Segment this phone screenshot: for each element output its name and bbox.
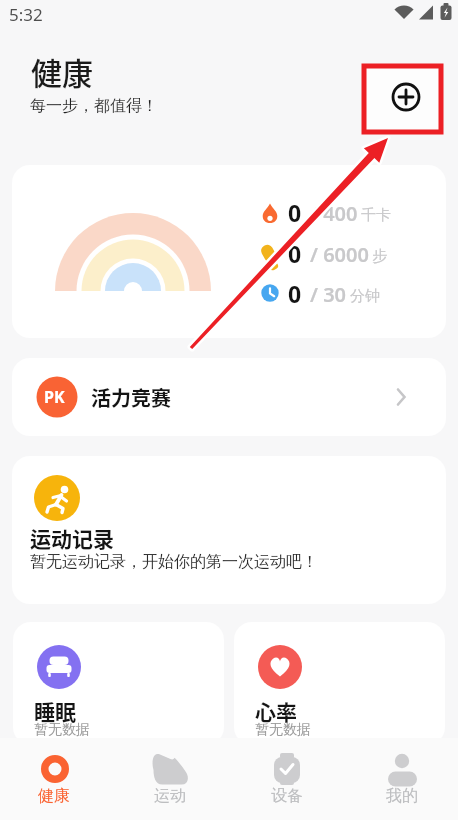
- staticText: 心率: [255, 696, 297, 726]
- staticText: 活力竞赛: [91, 383, 171, 412]
- staticText: 0: [288, 278, 302, 309]
- staticText: 步: [372, 247, 387, 266]
- button[interactable]: [382, 73, 430, 121]
- staticText: 每一步，都值得！: [30, 96, 158, 116]
- staticText: / 30: [310, 281, 347, 308]
- button[interactable]: [114, 738, 228, 820]
- button[interactable]: [0, 738, 114, 820]
- staticText: 睡眠: [34, 696, 76, 726]
- staticText: 运动记录: [30, 523, 114, 553]
- staticText: 0: [288, 197, 302, 228]
- staticText: PK: [44, 386, 65, 408]
- button[interactable]: [343, 738, 458, 820]
- button[interactable]: [12, 456, 446, 604]
- staticText: 分钟: [350, 287, 380, 306]
- staticText: 暂无运动记录，开始你的第一次运动吧！: [30, 552, 318, 572]
- staticText: 0: [288, 238, 302, 269]
- staticText: 设备: [271, 786, 303, 806]
- button[interactable]: [13, 622, 224, 745]
- staticText: 健康: [38, 786, 70, 806]
- staticText: 5:32: [9, 3, 43, 26]
- staticText: / 6000: [310, 241, 369, 268]
- staticText: 健康: [31, 49, 93, 94]
- button[interactable]: [228, 738, 343, 820]
- button[interactable]: [234, 622, 445, 745]
- staticText: 暂无数据: [255, 721, 311, 739]
- button[interactable]: [12, 358, 446, 436]
- staticText: 我的: [386, 786, 418, 806]
- button[interactable]: [12, 165, 446, 338]
- staticText: 运动: [154, 786, 186, 806]
- staticText: / 400: [310, 200, 358, 227]
- staticText: 千卡: [361, 206, 391, 225]
- staticText: 暂无数据: [34, 721, 90, 739]
